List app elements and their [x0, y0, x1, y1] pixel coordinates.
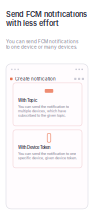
staticText: You can send the notification to one spe…: [18, 151, 77, 160]
staticText: You can send FCM notifications to one de…: [6, 39, 78, 50]
staticText: With Device Token: [18, 145, 50, 150]
staticText: Create notification: [15, 76, 56, 82]
staticText: Send FCM notifications with less effort: [6, 10, 87, 28]
staticText: You can send the notification to multipl…: [18, 104, 69, 118]
staticText: With Topic: [18, 98, 37, 103]
